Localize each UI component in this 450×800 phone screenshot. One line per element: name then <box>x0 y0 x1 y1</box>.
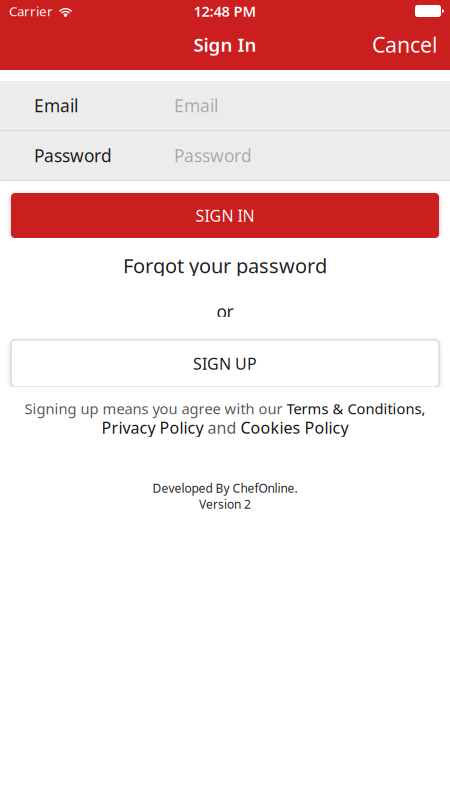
staticText: SIGN IN <box>195 205 254 226</box>
staticText: Forgot your password <box>123 252 327 279</box>
button[interactable]: Email <box>0 81 450 130</box>
staticText: SIGN UP <box>193 353 257 374</box>
staticText: and <box>203 417 240 438</box>
staticText: Privacy Policy <box>101 417 203 438</box>
staticText: Terms & Conditions, <box>286 399 425 418</box>
button[interactable]: Password <box>0 131 450 180</box>
staticText: Developed By ChefOnline. <box>152 480 297 496</box>
staticText: Email <box>174 94 218 117</box>
staticText: Password <box>34 144 112 167</box>
staticText: Cookies Policy <box>240 417 348 438</box>
staticText: Password <box>174 144 252 167</box>
staticText: or <box>216 300 233 323</box>
button[interactable]: Cookies Policy <box>240 417 348 438</box>
staticText: Signing up means you agree with our <box>24 399 286 418</box>
staticText: Sign In <box>193 32 256 57</box>
staticText: Version 2 <box>199 496 251 512</box>
staticText: Cancel <box>372 30 438 59</box>
button[interactable]: SIGN UP <box>11 340 439 387</box>
staticText: 12:48 PM <box>193 1 256 21</box>
staticText: Email <box>34 94 78 117</box>
button[interactable]: Cancel <box>360 22 450 66</box>
button[interactable]: Terms & Conditions, <box>286 399 425 418</box>
button[interactable]: Privacy Policy <box>101 417 203 438</box>
button[interactable]: SIGN IN <box>11 193 439 238</box>
button[interactable]: Forgot your password <box>0 255 450 276</box>
staticText: Carrier <box>9 2 53 20</box>
